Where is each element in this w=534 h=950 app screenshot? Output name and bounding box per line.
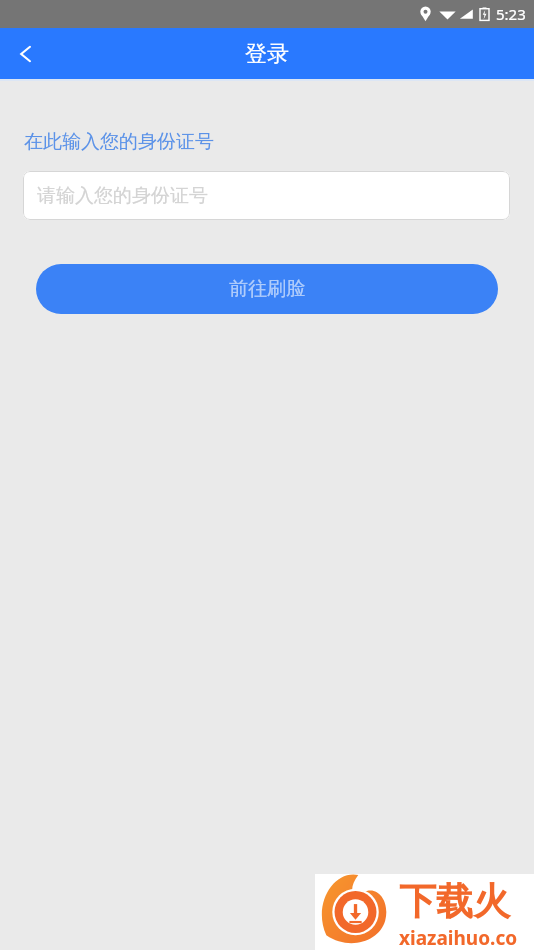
staticText: 前往刷脸 <box>229 277 305 301</box>
button[interactable]: Back <box>0 28 52 79</box>
staticText: 登录 <box>245 40 289 68</box>
staticText: 5:23 <box>496 4 526 24</box>
staticText: 下载火 <box>399 878 510 925</box>
staticText: 请输入您的身份证号 <box>37 184 208 208</box>
staticText: 在此输入您的身份证号 <box>24 130 214 154</box>
button[interactable]: 请输入您的身份证号 <box>23 171 510 220</box>
staticText: xiazaihuo.com <box>399 925 530 947</box>
button[interactable]: 前往刷脸 <box>36 264 498 314</box>
